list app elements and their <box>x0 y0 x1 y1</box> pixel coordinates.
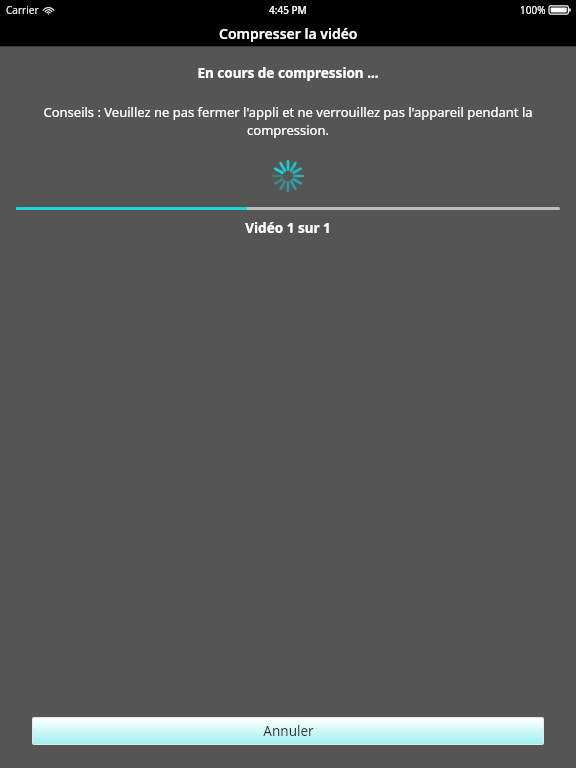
button[interactable]: Annuler <box>33 718 543 744</box>
staticText: Compresser la vidéo <box>219 24 358 43</box>
staticText: Annuler <box>263 722 314 740</box>
staticText: 4:45 PM <box>269 3 307 17</box>
staticText: Vidéo 1 sur 1 <box>0 219 576 237</box>
staticText: En cours de compression ... <box>0 64 576 82</box>
staticText: Carrier <box>6 3 39 17</box>
staticText: Conseils : Veuillez ne pas fermer l'appl… <box>10 103 566 139</box>
staticText: 100% <box>520 3 546 17</box>
